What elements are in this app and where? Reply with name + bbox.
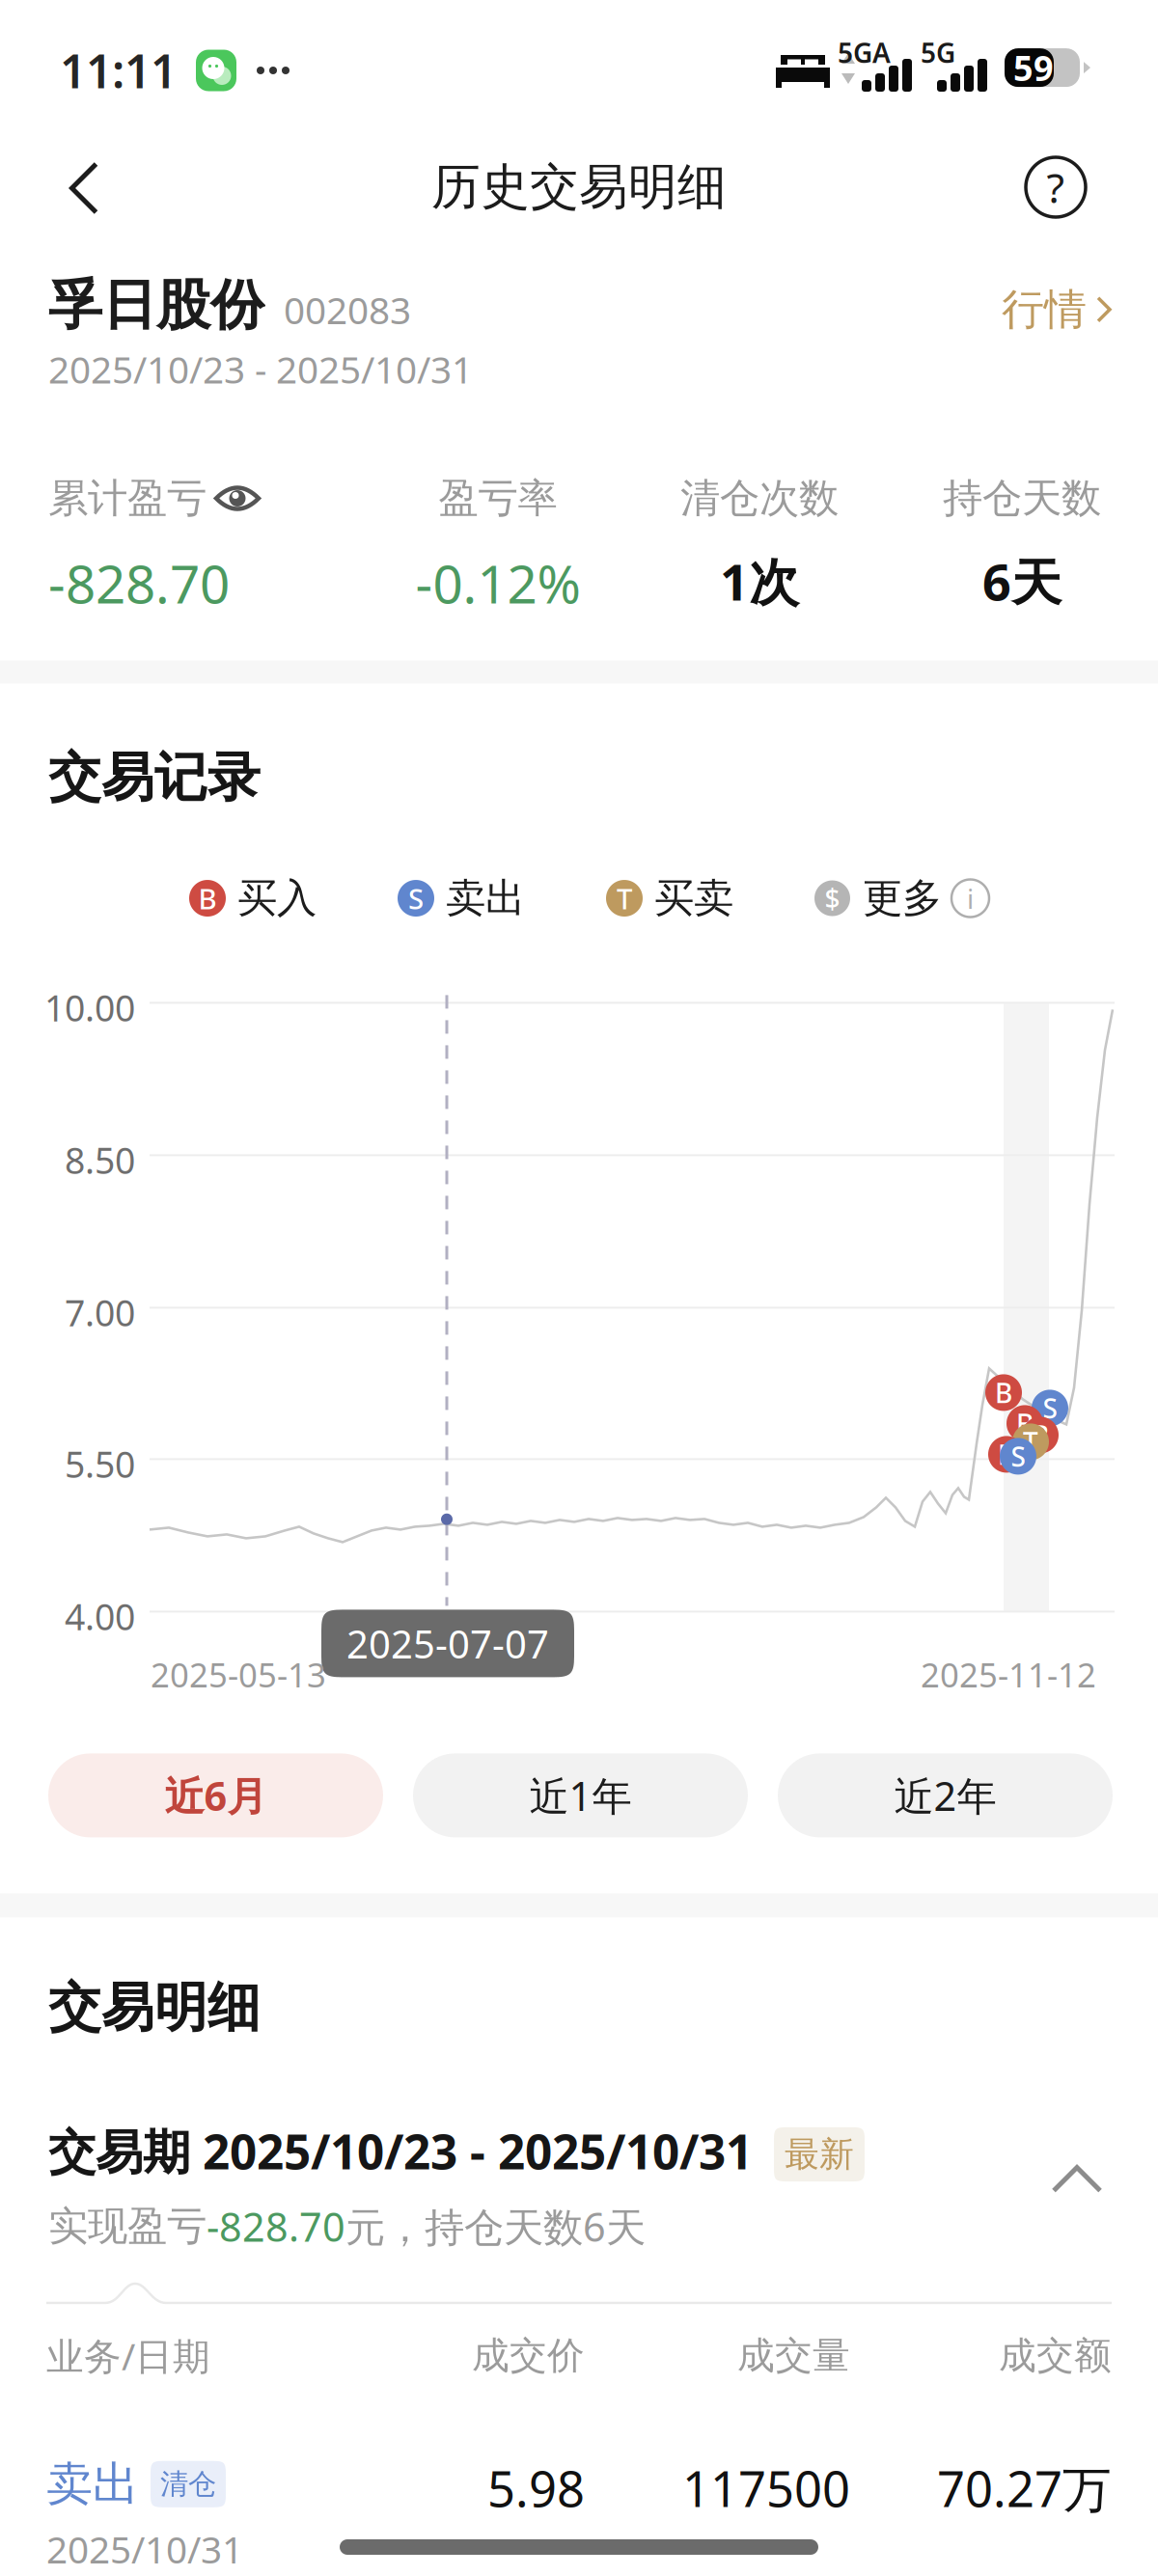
staticText: 8.50 <box>65 1136 135 1184</box>
staticText: 成交价 <box>472 2333 585 2379</box>
staticText: 交易期 2025/10/23 - 2025/10/31 <box>48 2119 753 2182</box>
staticText: 清仓 <box>160 2467 216 2502</box>
staticText: 5G <box>921 35 955 70</box>
staticText: ? <box>1047 160 1065 215</box>
staticText: 实现盈亏 <box>48 2202 207 2251</box>
button[interactable]: 行情 <box>1002 283 1110 338</box>
staticText: 卖出 <box>446 874 525 923</box>
staticText: 累计盈亏 <box>48 474 207 523</box>
staticText: 4.00 <box>65 1592 135 1640</box>
button[interactable]: 帮助 <box>1003 134 1109 240</box>
button[interactable]: 近6月 <box>48 1753 383 1837</box>
staticText: 清仓次数 <box>680 474 839 523</box>
staticText: 2025-11-12 <box>921 1652 1096 1696</box>
staticText: 业务/日期 <box>46 2331 210 2380</box>
staticText: 元，持仓天数6天 <box>345 2200 646 2253</box>
staticText: 成交量 <box>737 2333 850 2379</box>
staticText: 近2年 <box>894 1769 996 1822</box>
staticText: 2025-05-13 <box>151 1652 326 1696</box>
staticText: -0.12% <box>415 548 580 618</box>
staticText: 11:11 <box>60 40 177 101</box>
staticText: 盈亏率 <box>439 474 557 523</box>
staticText: 交易明细 <box>48 1975 261 2040</box>
staticText: B <box>1032 1417 1049 1453</box>
staticText: 2025/10/23 - 2025/10/31 <box>48 344 473 394</box>
staticText: 5.50 <box>65 1440 135 1488</box>
staticText: B <box>1016 1406 1034 1441</box>
staticText: 5GA <box>838 35 891 70</box>
staticText: T <box>617 879 632 917</box>
staticText: 孚日股份 <box>48 272 264 338</box>
staticText: S <box>1043 1390 1057 1426</box>
staticText: 卖出 <box>46 2456 139 2513</box>
staticText: 2025-07-07 <box>346 1618 549 1669</box>
staticText: T <box>1023 1424 1038 1460</box>
staticText: 117500 <box>682 2456 850 2521</box>
staticText: i <box>967 880 974 916</box>
staticText: 近6月 <box>165 1769 267 1822</box>
staticText: 7.00 <box>65 1288 135 1336</box>
staticText: 1次 <box>720 548 799 615</box>
staticText: 5.98 <box>487 2456 585 2521</box>
button[interactable]: 近2年 <box>778 1753 1113 1837</box>
staticText: B <box>198 879 217 917</box>
staticText: 持仓天数 <box>943 474 1101 523</box>
staticText: 成交额 <box>999 2333 1112 2379</box>
staticText: S <box>408 879 424 917</box>
staticText: 2025/10/31 <box>46 2524 243 2574</box>
staticText: B <box>998 1436 1015 1472</box>
staticText: 历史交易明细 <box>431 157 727 217</box>
staticText: -828.70 <box>48 548 230 618</box>
staticText: S <box>1011 1438 1025 1474</box>
staticText: 交易记录 <box>48 745 261 810</box>
staticText: B <box>995 1375 1012 1411</box>
staticText: 6天 <box>982 548 1061 615</box>
staticText: 买入 <box>237 874 317 923</box>
staticText: 买卖 <box>654 874 733 923</box>
staticText: 行情 <box>1002 283 1087 335</box>
staticText: 最新 <box>785 2133 854 2176</box>
button[interactable]: 近1年 <box>413 1753 748 1837</box>
staticText: 002083 <box>284 285 411 334</box>
staticText: 近1年 <box>529 1769 632 1822</box>
staticText: 10.00 <box>44 984 135 1031</box>
staticText: $ <box>825 880 840 916</box>
staticText: 70.27万 <box>937 2456 1112 2521</box>
button[interactable]: 返回 <box>19 134 125 240</box>
staticText: 59 <box>1013 45 1054 91</box>
button[interactable]: 收起 <box>1036 2119 1117 2200</box>
staticText: 更多 <box>863 874 942 923</box>
staticText: -828.70 <box>207 2200 345 2253</box>
